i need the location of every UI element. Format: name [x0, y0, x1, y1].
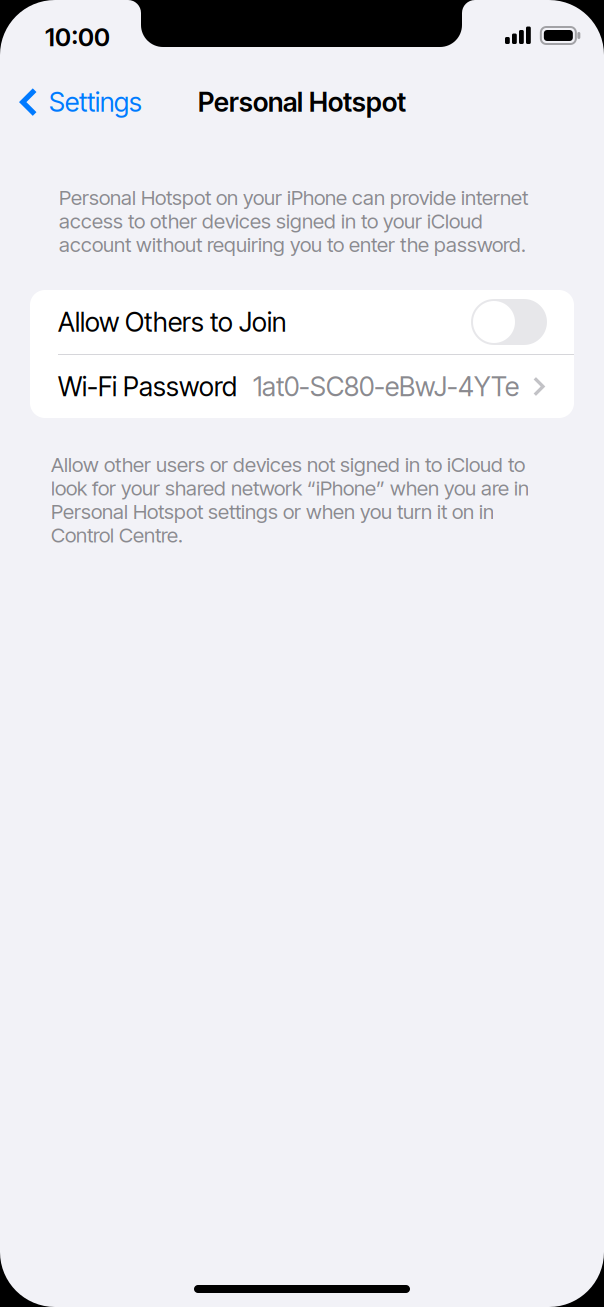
staticText: 1at0-SC80-eBwJ-4YTe [253, 370, 519, 403]
staticText: Personal Hotspot on your iPhone can prov… [59, 185, 528, 257]
staticText: Allow other users or devices not signed … [51, 452, 529, 547]
button[interactable]: Settings [2, 74, 160, 130]
staticText: Personal Hotspot [198, 86, 406, 118]
staticText: Allow Others to Join [58, 306, 286, 338]
staticText: 10:00 [45, 22, 110, 52]
staticText: Settings [49, 86, 142, 118]
staticText: Wi-Fi Password [58, 370, 237, 403]
button[interactable]: Allow Others to Join [30, 290, 574, 354]
button[interactable]: Wi-Fi Password [30, 355, 574, 418]
